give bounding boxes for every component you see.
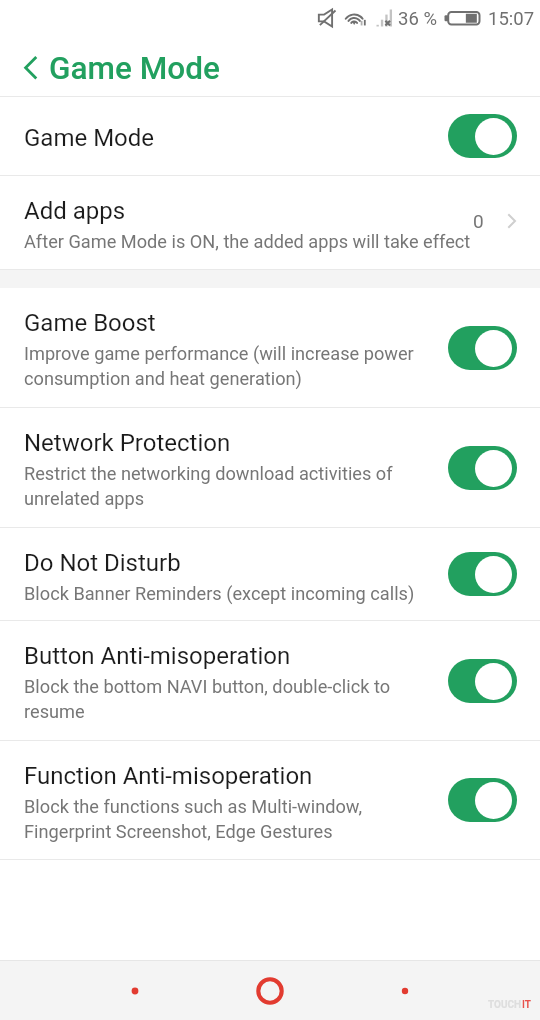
staticText: After Game Mode is ON, the added apps wi… bbox=[24, 231, 471, 253]
staticText: Function Anti-misoperation bbox=[24, 762, 313, 790]
staticText: Game Mode bbox=[24, 124, 155, 152]
button[interactable]: Toggle bbox=[448, 552, 517, 596]
button[interactable]: Function Anti-misoperation bbox=[0, 741, 540, 859]
staticText: 36 % bbox=[398, 8, 437, 30]
staticText: Restrict the networking download activit… bbox=[24, 463, 393, 510]
staticText: IT bbox=[522, 999, 531, 1011]
button[interactable]: Toggle bbox=[448, 446, 517, 490]
button[interactable]: Toggle bbox=[448, 778, 517, 822]
staticText: Improve game performance (will increase … bbox=[24, 343, 414, 390]
button[interactable]: Home bbox=[240, 961, 300, 1020]
button[interactable]: Do Not Disturb bbox=[0, 528, 540, 620]
staticText: Add apps bbox=[24, 197, 126, 225]
staticText: Block the bottom NAVI button, double-cli… bbox=[24, 676, 391, 723]
staticText: Game Boost bbox=[24, 309, 156, 337]
button[interactable]: Network Protection bbox=[0, 408, 540, 527]
staticText: 15:07 bbox=[488, 8, 535, 30]
staticText: Game Mode bbox=[49, 50, 220, 87]
button[interactable]: Button Anti-misoperation bbox=[0, 621, 540, 740]
button[interactable]: Game Boost bbox=[0, 288, 540, 407]
staticText: TOUCH bbox=[488, 999, 522, 1011]
staticText: Button Anti-misoperation bbox=[24, 642, 291, 670]
button[interactable]: Back bbox=[0, 40, 48, 96]
staticText: Network Protection bbox=[24, 429, 231, 457]
button[interactable]: Toggle bbox=[448, 114, 517, 158]
staticText: Block Banner Reminders (except incoming … bbox=[24, 583, 415, 605]
button[interactable]: Game Mode bbox=[0, 97, 540, 175]
button[interactable]: Toggle bbox=[448, 326, 517, 370]
staticText: 0 bbox=[473, 210, 484, 232]
button[interactable]: Toggle bbox=[448, 659, 517, 703]
staticText: Do Not Disturb bbox=[24, 549, 181, 577]
button[interactable]: Add apps bbox=[0, 176, 540, 269]
button[interactable]: Recent apps bbox=[375, 961, 435, 1020]
staticText: Block the functions such as Multi-window… bbox=[24, 796, 362, 843]
button[interactable]: Back bbox=[105, 961, 165, 1020]
